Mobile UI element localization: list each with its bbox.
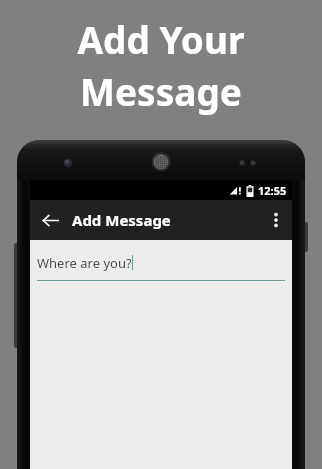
staticText: 12:55 bbox=[258, 183, 287, 198]
button[interactable]: More options bbox=[260, 200, 292, 240]
staticText: Where are you? bbox=[37, 254, 132, 272]
button[interactable]: Where are you? bbox=[30, 240, 292, 287]
button[interactable]: Navigate up bbox=[30, 200, 70, 240]
staticText: Add Message bbox=[72, 210, 171, 230]
staticText: Add Your bbox=[0, 14, 322, 64]
staticText: Message bbox=[0, 66, 322, 116]
